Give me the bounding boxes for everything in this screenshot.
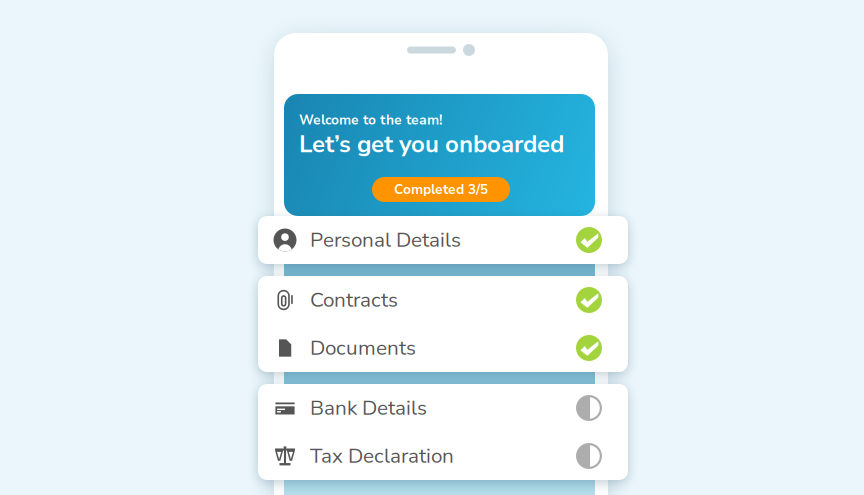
button[interactable]: Bank Details: [258, 384, 628, 432]
staticText: Bank Details: [310, 394, 427, 422]
staticText: Tax Declaration: [310, 442, 454, 470]
staticText: Personal Details: [310, 226, 461, 254]
staticText: Contracts: [310, 286, 398, 314]
staticText: Documents: [310, 334, 416, 362]
staticText: Completed 3/5: [394, 180, 488, 199]
staticText: Let’s get you onboarded: [299, 128, 564, 161]
staticText: Welcome to the team!: [299, 111, 442, 129]
button[interactable]: Completed 3/5: [372, 177, 510, 202]
button[interactable]: Tax Declaration: [258, 432, 628, 480]
button[interactable]: Contracts: [258, 276, 628, 324]
button[interactable]: Personal Details: [258, 216, 628, 264]
button[interactable]: Documents: [258, 324, 628, 372]
